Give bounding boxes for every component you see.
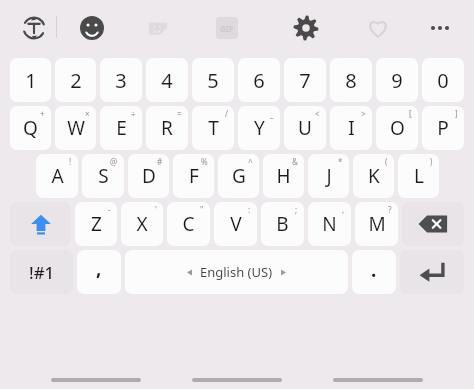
button[interactable]: E (100, 106, 142, 150)
staticText: 8 (345, 67, 357, 94)
staticText: D (142, 163, 156, 189)
staticText: L (414, 163, 424, 189)
staticText: W (67, 115, 85, 141)
staticText: N (322, 211, 337, 237)
button[interactable]: T (192, 106, 234, 150)
button[interactable]: . (352, 250, 396, 294)
button[interactable]: More options (424, 12, 456, 44)
button[interactable]: L (398, 154, 439, 198)
staticText: O (390, 115, 405, 141)
button[interactable]: N (308, 202, 351, 246)
button[interactable]: 6 (238, 58, 280, 102)
staticText: J (326, 163, 332, 189)
staticText: × (85, 108, 90, 119)
button[interactable]: Stickers (142, 12, 174, 44)
button[interactable]: C (167, 202, 210, 246)
staticText: ' (155, 204, 157, 215)
staticText: ! (69, 156, 72, 167)
staticText: U (298, 115, 312, 141)
staticText: Y (254, 115, 265, 141)
staticText: - (108, 204, 111, 215)
staticText: , (96, 255, 102, 281)
button[interactable]: , (77, 250, 121, 294)
button[interactable]: Q (10, 106, 51, 150)
button[interactable]: 3 (100, 58, 142, 102)
staticText: T (208, 115, 219, 141)
button[interactable]: H (263, 154, 304, 198)
button[interactable]: 1 (10, 58, 51, 102)
staticText: * (338, 156, 343, 167)
staticText: ^ (248, 156, 253, 167)
button[interactable]: GIF (212, 13, 242, 43)
button[interactable]: V (214, 202, 257, 246)
button[interactable]: 5 (192, 58, 234, 102)
button[interactable]: Shift (10, 202, 71, 246)
staticText: ÷ (131, 108, 136, 119)
button[interactable]: P (422, 106, 464, 150)
button[interactable]: Navigation (51, 378, 141, 382)
button[interactable]: 4 (146, 58, 188, 102)
staticText: 5 (207, 67, 219, 94)
button[interactable]: Navigation (333, 378, 423, 382)
staticText: 4 (161, 67, 173, 94)
staticText: " (200, 204, 204, 215)
button[interactable]: B (261, 202, 304, 246)
button[interactable]: U (284, 106, 326, 150)
button[interactable]: Emoji (76, 12, 108, 44)
staticText: 9 (391, 67, 403, 94)
button[interactable]: J (308, 154, 349, 198)
button[interactable]: F (173, 154, 214, 198)
button[interactable]: W (55, 106, 96, 150)
button[interactable]: 9 (376, 58, 418, 102)
button[interactable]: O (376, 106, 418, 150)
button[interactable]: !#1 (10, 250, 73, 294)
button[interactable]: Translate (18, 12, 50, 44)
staticText: !#1 (29, 261, 55, 284)
button[interactable]: I (330, 106, 372, 150)
button[interactable]: Y (238, 106, 280, 150)
button[interactable]: 0 (422, 58, 464, 102)
button[interactable]: Space, English (US) (125, 250, 348, 294)
button[interactable]: A (36, 154, 78, 198)
staticText: ; (295, 204, 298, 215)
staticText: H (276, 163, 291, 189)
button[interactable]: Favorites (362, 12, 394, 44)
staticText: : (248, 204, 251, 215)
staticText: K (368, 163, 380, 189)
staticText: 1 (25, 67, 37, 94)
staticText: I (348, 115, 355, 141)
staticText: ) (430, 156, 433, 167)
staticText: 2 (70, 67, 82, 94)
button[interactable]: Z (75, 202, 117, 246)
staticText: & (292, 156, 298, 167)
staticText: GIF (220, 23, 234, 34)
staticText: @ (110, 156, 118, 167)
staticText: ] (455, 108, 458, 119)
button[interactable]: X (121, 202, 163, 246)
staticText: R (161, 115, 173, 141)
staticText: Q (23, 115, 38, 141)
staticText: , (342, 204, 345, 215)
button[interactable]: G (218, 154, 259, 198)
staticText: 7 (299, 67, 311, 94)
button[interactable]: S (82, 154, 124, 198)
button[interactable]: Navigation (192, 378, 282, 382)
button[interactable]: R (146, 106, 188, 150)
staticText: Z (91, 211, 102, 237)
button[interactable]: 2 (55, 58, 96, 102)
staticText: 6 (253, 67, 265, 94)
staticText: % (201, 156, 208, 167)
staticText: > (361, 108, 366, 119)
button[interactable]: D (128, 154, 169, 198)
button[interactable]: Settings (290, 12, 322, 44)
staticText: G (232, 163, 246, 189)
button[interactable]: 8 (330, 58, 372, 102)
button[interactable]: M (355, 202, 398, 246)
staticText: B (276, 211, 289, 237)
button[interactable]: Enter (400, 250, 464, 294)
button[interactable]: Backspace (402, 202, 464, 246)
button[interactable]: 7 (284, 58, 326, 102)
staticText: = (177, 108, 182, 119)
staticText: F (189, 163, 199, 189)
button[interactable]: K (353, 154, 394, 198)
